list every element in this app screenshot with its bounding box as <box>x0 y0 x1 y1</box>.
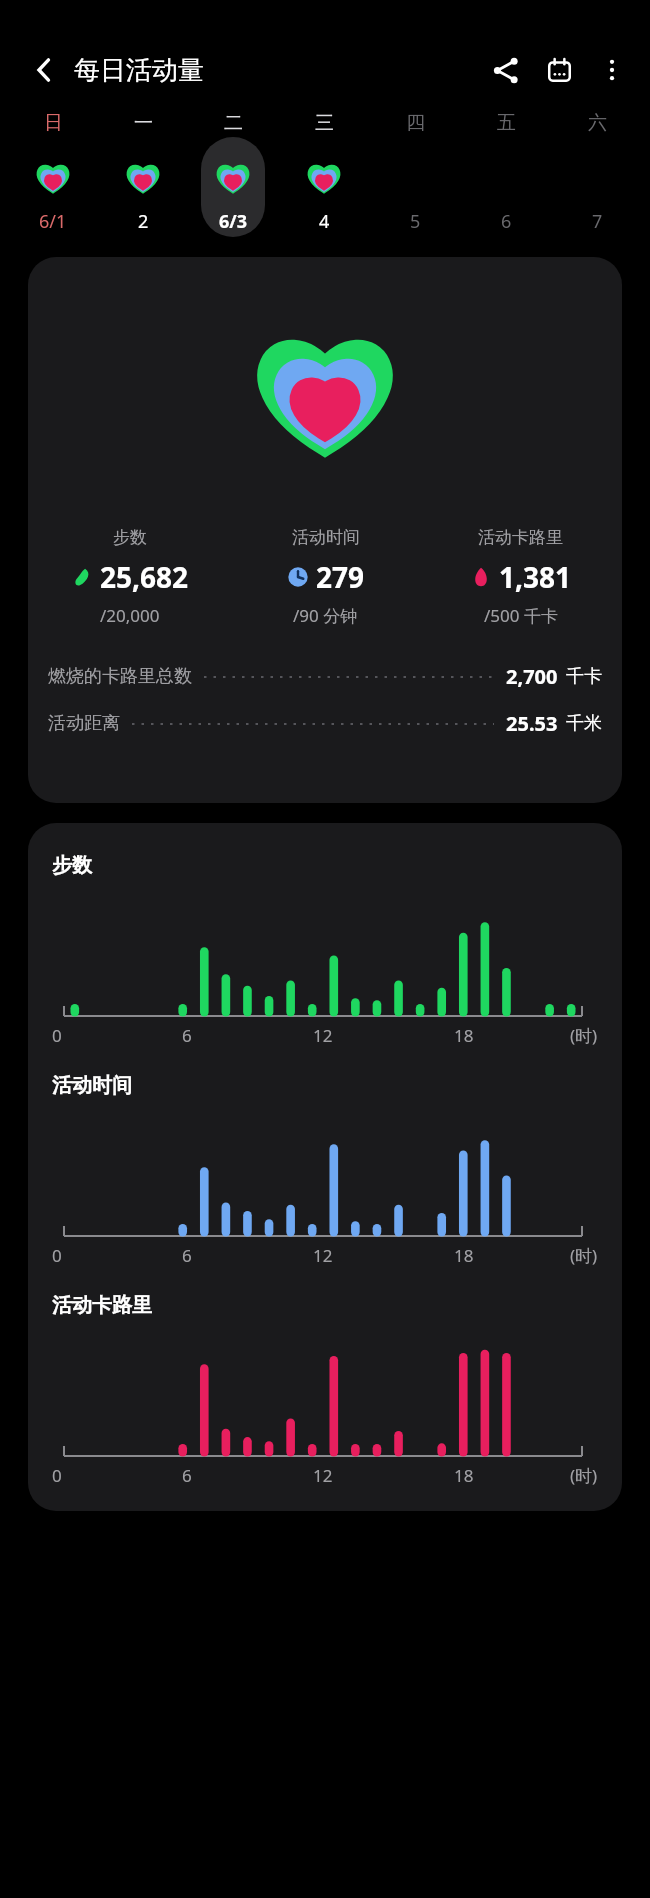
staticText: 0 <box>52 1244 62 1267</box>
button[interactable]: 燃烧的卡路里总数 <box>48 663 602 690</box>
staticText: 1,381 <box>499 558 572 596</box>
staticText: 活动卡路里 <box>52 1293 152 1318</box>
button[interactable]: 活动卡路里 <box>52 1293 598 1487</box>
staticText: 每日活动量 <box>74 54 204 87</box>
staticText: 18 <box>454 1464 474 1487</box>
button[interactable]: Calendar <box>532 43 586 97</box>
staticText: 步数 <box>52 853 92 878</box>
button[interactable]: 日 <box>8 105 98 245</box>
staticText: 6 <box>501 209 512 234</box>
button[interactable]: 步数 <box>32 527 228 627</box>
staticText: 0 <box>52 1024 62 1047</box>
staticText: 18 <box>454 1244 474 1267</box>
staticText: 二 <box>224 111 243 135</box>
staticText: 6/1 <box>39 209 67 234</box>
staticText: /500 千卡 <box>484 604 558 627</box>
staticText: 六 <box>588 111 607 135</box>
button[interactable]: 活动距离 <box>48 710 602 737</box>
staticText: 6 <box>182 1024 192 1047</box>
staticText: 步数 <box>113 527 147 548</box>
staticText: 18 <box>454 1024 474 1047</box>
staticText: 2 <box>138 209 149 234</box>
button[interactable]: 四 <box>369 105 460 245</box>
button[interactable]: 五 <box>460 105 551 245</box>
staticText: 25.53 <box>506 710 558 737</box>
staticText: 燃烧的卡路里总数 <box>48 665 192 688</box>
staticText: (时) <box>570 1244 598 1267</box>
staticText: /20,000 <box>100 604 160 627</box>
staticText: 日 <box>44 111 63 135</box>
button[interactable]: 活动时间 <box>52 1073 598 1267</box>
staticText: 活动时间 <box>52 1073 132 1098</box>
staticText: 一 <box>134 111 153 135</box>
staticText: 5 <box>410 209 421 234</box>
button[interactable]: 步数 <box>52 853 598 1047</box>
button[interactable]: 二 <box>188 105 278 245</box>
staticText: 三 <box>315 111 334 135</box>
staticText: 12 <box>313 1244 333 1267</box>
staticText: 6 <box>182 1464 192 1487</box>
staticText: 6/3 <box>219 209 248 234</box>
staticText: 4 <box>319 209 330 234</box>
staticText: 12 <box>313 1464 333 1487</box>
staticText: 五 <box>497 111 516 135</box>
button[interactable]: 六 <box>551 105 642 245</box>
button[interactable]: 步数 <box>28 257 622 803</box>
staticText: 279 <box>316 558 365 596</box>
button[interactable]: 活动卡路里 <box>423 527 618 627</box>
staticText: /90 分钟 <box>293 604 358 627</box>
staticText: 2,700 <box>506 663 558 690</box>
staticText: 千米 <box>566 712 602 735</box>
staticText: 6 <box>182 1244 192 1267</box>
button[interactable]: 一 <box>98 105 188 245</box>
staticText: 活动卡路里 <box>478 527 563 548</box>
staticText: 四 <box>406 111 425 135</box>
staticText: (时) <box>570 1024 598 1047</box>
staticText: 千卡 <box>566 665 602 688</box>
button[interactable]: Back <box>20 46 68 94</box>
staticText: (时) <box>570 1464 598 1487</box>
staticText: 12 <box>313 1024 333 1047</box>
button[interactable]: 三 <box>278 105 369 245</box>
button[interactable]: Share <box>478 43 532 97</box>
staticText: 7 <box>592 209 603 234</box>
staticText: 活动距离 <box>48 712 120 735</box>
staticText: 活动时间 <box>292 527 360 548</box>
staticText: 0 <box>52 1464 62 1487</box>
staticText: 25,682 <box>100 558 189 596</box>
button[interactable]: 活动时间 <box>228 527 423 627</box>
button[interactable]: More options <box>586 44 638 96</box>
